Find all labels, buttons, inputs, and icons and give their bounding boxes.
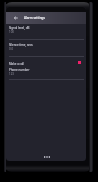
staticText: Make a call <box>9 62 25 66</box>
button[interactable] <box>6 66 86 80</box>
button[interactable]: Back <box>6 12 24 24</box>
staticText: Alarm settings <box>24 16 45 20</box>
staticText: Phone number <box>9 68 30 72</box>
button[interactable] <box>6 24 86 40</box>
button[interactable]: Back <box>6 12 86 24</box>
staticText: Silence time, secs <box>9 43 33 47</box>
button[interactable]: Make a call <box>6 58 86 72</box>
staticText: 0.0 <box>9 47 14 51</box>
button[interactable] <box>6 41 86 57</box>
staticText: 123 <box>9 72 14 76</box>
staticText: Signal level, dB <box>9 26 30 30</box>
staticText: 100 <box>9 30 14 34</box>
other: Navigation bar <box>44 156 50 158</box>
